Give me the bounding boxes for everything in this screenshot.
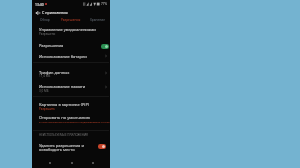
button[interactable]	[32, 81, 110, 94]
staticText: 77%	[101, 2, 107, 6]
staticText: Обзор	[40, 18, 50, 22]
button[interactable]: Home	[67, 158, 76, 167]
button[interactable]	[32, 51, 110, 61]
button[interactable]	[32, 112, 110, 125]
staticText: Разрешения	[61, 18, 81, 22]
button[interactable]: Разрешения	[58, 17, 84, 23]
staticText: Открывать по умолчанию	[39, 115, 90, 121]
staticText: Хранение	[90, 18, 105, 22]
button[interactable]	[32, 99, 110, 112]
staticText: Разрешено	[39, 32, 56, 36]
staticText: Разрешить	[39, 107, 55, 111]
staticText: Использование памяти	[39, 84, 86, 90]
staticText: Картинка в картинке (PiP)	[39, 102, 90, 108]
button[interactable]	[32, 25, 110, 38]
staticText: Трафик данных	[39, 70, 70, 76]
button[interactable]: Хранение	[84, 17, 110, 23]
staticText: НЕИСПОЛЬЗУЕМЫЕ ПРИЛОЖЕНИЯ	[39, 133, 88, 137]
staticText: Разрешения	[39, 43, 64, 49]
button[interactable]: Back	[88, 158, 97, 167]
button[interactable]: Обзор	[32, 17, 58, 23]
button[interactable]	[32, 67, 110, 80]
staticText: 13:40	[35, 2, 44, 7]
staticText: С приложения	[42, 10, 68, 15]
staticText: Использование батареи	[39, 54, 87, 60]
button[interactable]	[32, 140, 110, 154]
button[interactable]	[32, 40, 110, 50]
staticText: Управление уведомлениями	[39, 27, 96, 33]
staticText: 11,4 МБ	[39, 74, 51, 78]
staticText: 3,0 МБ	[39, 89, 49, 93]
staticText: В этом приложении открываются поддержива…	[39, 120, 110, 123]
button[interactable]: Back	[34, 9, 41, 16]
staticText: Удалить разрешения и	[39, 143, 84, 149]
button[interactable]: Recents	[45, 158, 54, 167]
staticText: освободить место	[39, 147, 75, 153]
